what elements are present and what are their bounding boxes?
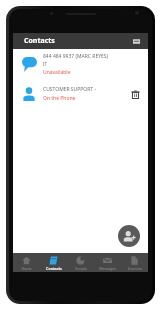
staticText: Home (21, 266, 32, 271)
button[interactable]: CUSTOMER SUPPORT - (13, 79, 148, 109)
button[interactable]: Add contact (118, 225, 140, 247)
staticText: Scripts (75, 266, 87, 271)
staticText: On the Phone (43, 95, 76, 102)
staticText: IT (43, 61, 48, 67)
button[interactable]: Scripts (67, 253, 94, 272)
button[interactable]: Contacts (40, 253, 67, 272)
button[interactable]: Home (13, 253, 40, 272)
button[interactable]: Invoices (121, 253, 148, 272)
button[interactable]: Delete (128, 87, 142, 101)
button[interactable]: Messages (94, 253, 121, 272)
staticText: 844 484 9937 (MARC REYES) (43, 53, 109, 60)
staticText: Unavailable (43, 69, 71, 76)
staticText: CUSTOMER SUPPORT - (43, 86, 97, 93)
button[interactable]: 844 484 9937 (MARC REYES) (13, 49, 148, 79)
staticText: Invoices (128, 266, 142, 271)
staticText: Contacts (46, 266, 62, 271)
button[interactable]: Menu (131, 36, 142, 47)
staticText: Messages (99, 266, 116, 271)
staticText: Contacts (24, 36, 55, 46)
